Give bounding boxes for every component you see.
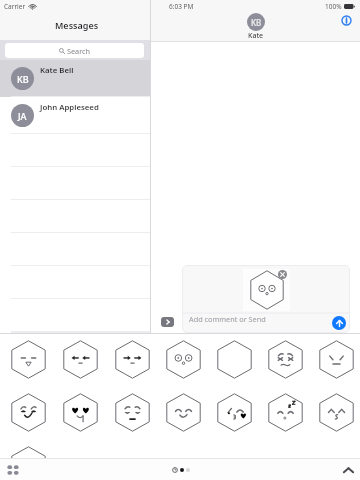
staticText: John Appleseed: [40, 102, 99, 113]
staticText: Carrier: [4, 2, 26, 11]
staticText: Kate Bell: [40, 65, 74, 76]
staticText: Search: [67, 46, 91, 56]
button[interactable]: Conversation info: [341, 15, 352, 26]
button[interactable]: Send: [332, 316, 346, 330]
button[interactable]: Sticker 13: [260, 393, 311, 432]
button[interactable]: JA: [0, 97, 150, 134]
button[interactable]: Remove sticker: [278, 270, 287, 279]
button[interactable]: Remove sticker: [182, 265, 350, 333]
button[interactable]: Collapse keyboard: [343, 466, 354, 474]
button[interactable]: Sticker 3: [106, 340, 158, 379]
button[interactable]: Search: [5, 43, 144, 58]
button[interactable]: KB: [0, 60, 150, 97]
button[interactable]: Sticker 15: [2, 446, 54, 458]
button[interactable]: Sticker 5: [209, 340, 260, 379]
button[interactable]: Show app drawer: [161, 317, 174, 327]
button[interactable]: Sticker 8: [2, 393, 54, 432]
button[interactable]: All stickers: [6, 463, 20, 477]
staticText: KB: [251, 17, 262, 28]
staticText: Messages: [55, 19, 99, 31]
button[interactable]: Sticker 4: [158, 340, 209, 379]
button[interactable]: Sticker 2: [54, 340, 106, 379]
button[interactable]: Sticker 11: [158, 393, 209, 432]
button[interactable]: Sticker 1: [2, 340, 54, 379]
button[interactable]: Sticker 9: [54, 393, 106, 432]
button[interactable]: Sticker 7: [311, 340, 360, 379]
button[interactable]: [0, 332, 150, 333]
staticText: Add comment or Send: [189, 314, 266, 324]
button[interactable]: Sticker 12: [209, 393, 260, 432]
staticText: Kate: [248, 31, 264, 41]
button[interactable]: Sticker 6: [260, 340, 311, 379]
staticText: 6:03 PM: [169, 2, 194, 11]
staticText: KB: [17, 73, 29, 85]
staticText: 100%: [325, 2, 342, 11]
button[interactable]: Sticker 14: [311, 393, 360, 432]
button[interactable]: KB: [236, 13, 276, 41]
button[interactable]: Sticker 10: [106, 393, 158, 432]
staticText: JA: [18, 110, 27, 122]
